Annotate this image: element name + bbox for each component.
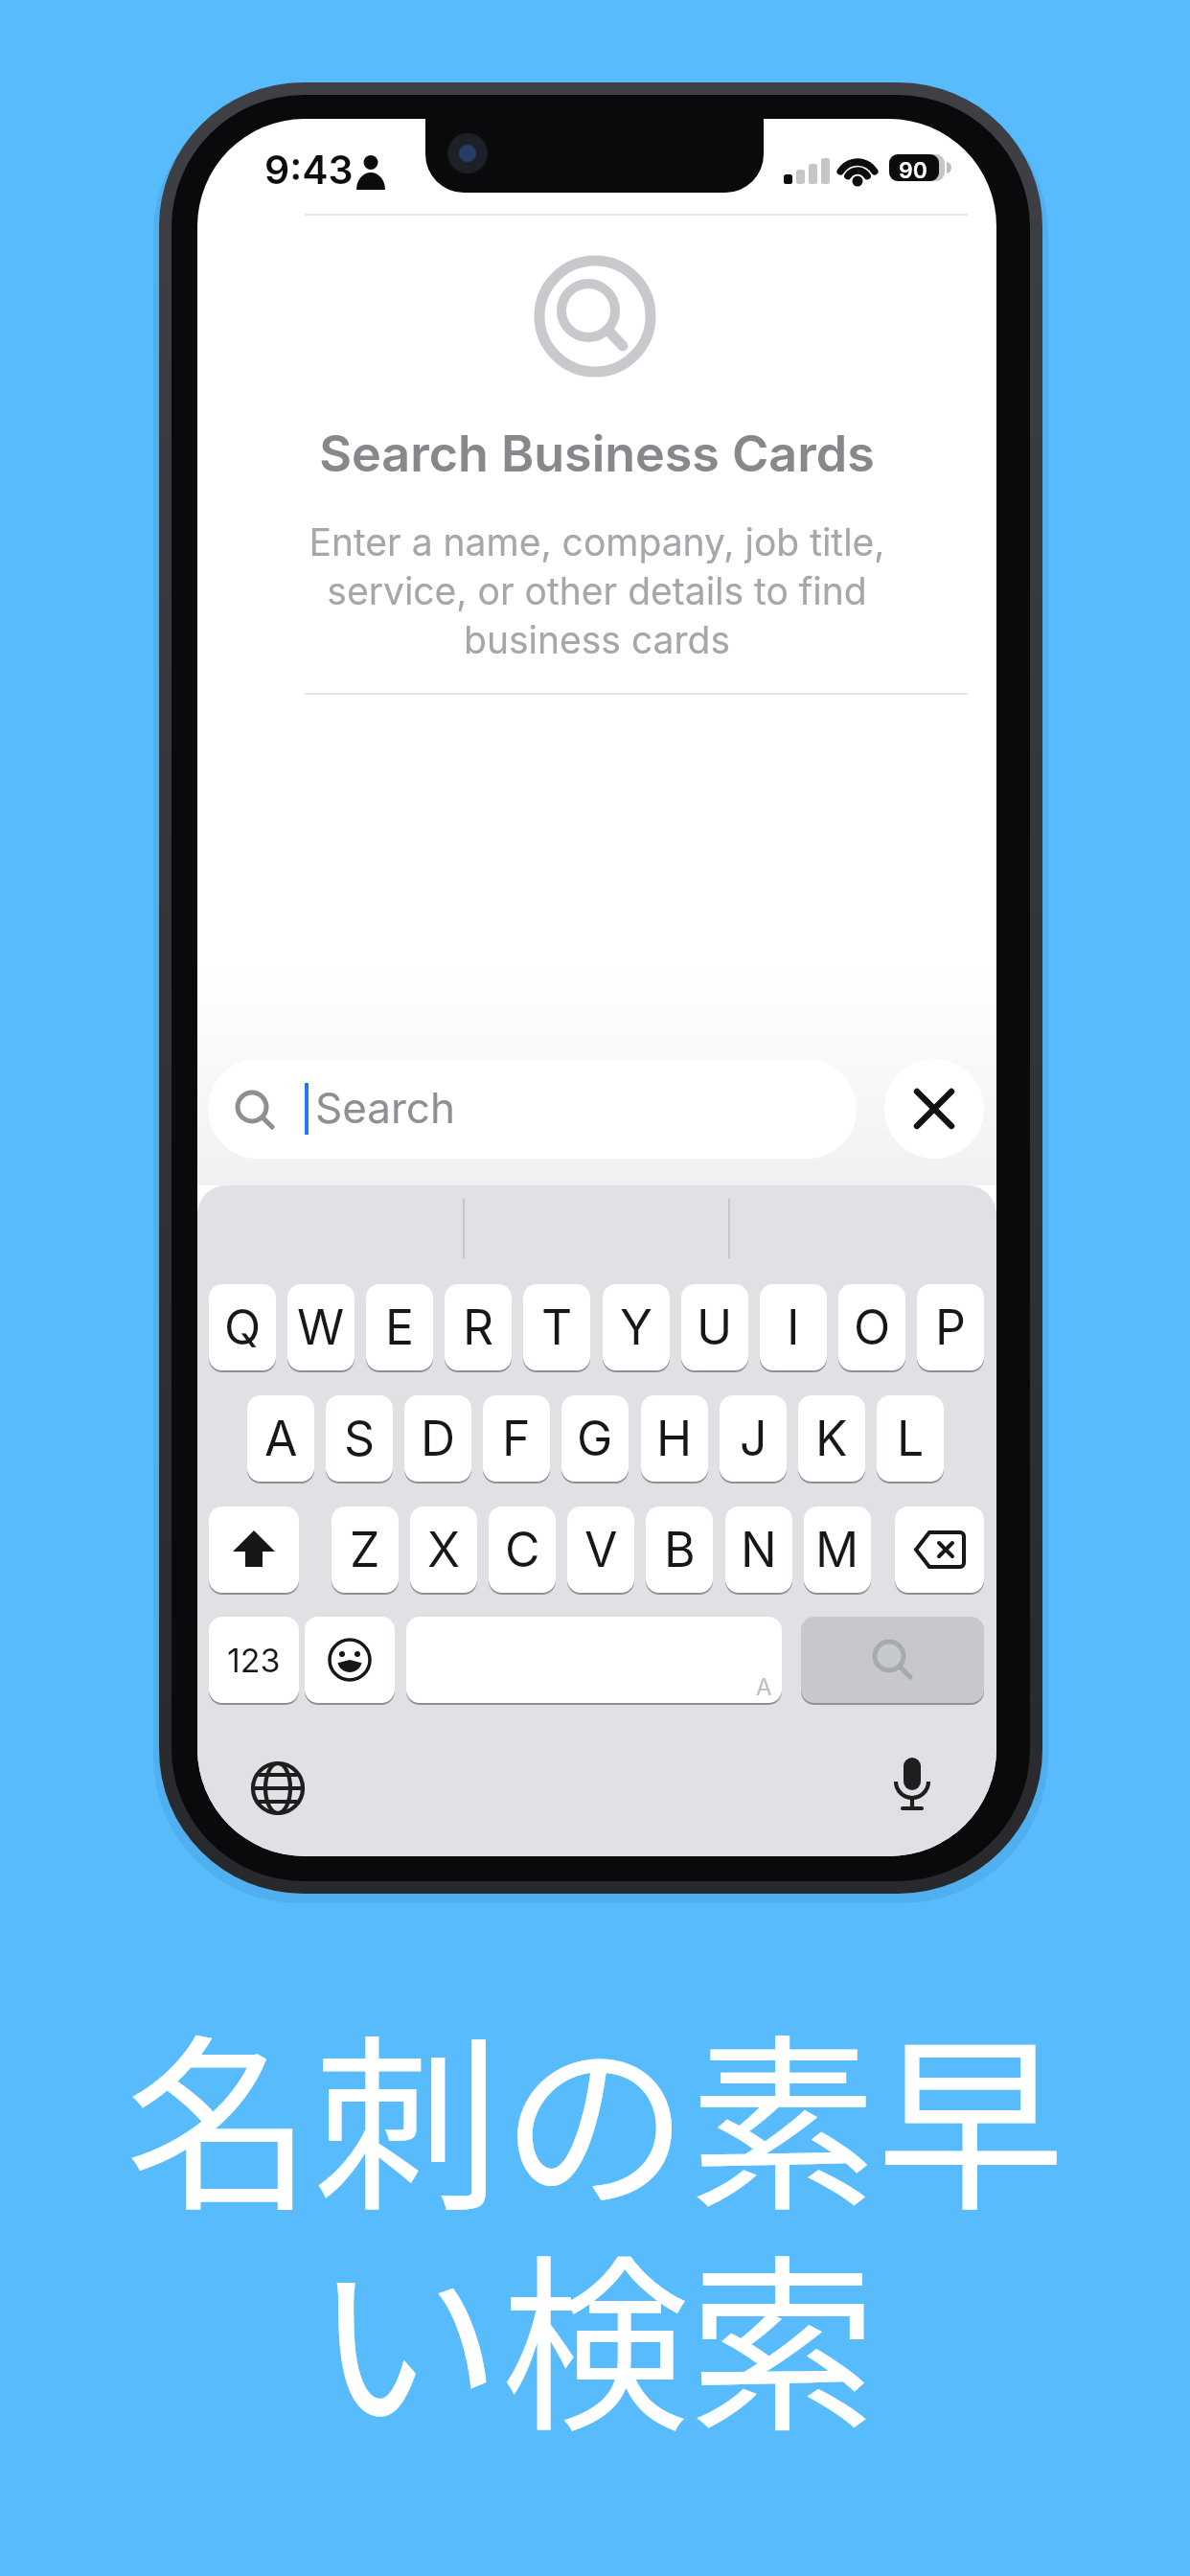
staticText: T bbox=[541, 1299, 573, 1356]
button[interactable]: Y bbox=[603, 1284, 670, 1370]
staticText: 123 bbox=[227, 1641, 281, 1680]
staticText: Y bbox=[620, 1299, 652, 1356]
staticText: Q bbox=[224, 1299, 262, 1356]
staticText: B bbox=[664, 1521, 696, 1578]
button[interactable]: R bbox=[445, 1284, 512, 1370]
staticText: J bbox=[740, 1410, 767, 1467]
staticText: Search Business Cards bbox=[197, 424, 996, 484]
button[interactable]: C bbox=[489, 1506, 556, 1593]
button[interactable]: Search bbox=[208, 1059, 857, 1159]
staticText: K bbox=[815, 1410, 848, 1467]
button[interactable] bbox=[305, 1617, 395, 1703]
button[interactable]: 123 bbox=[209, 1617, 299, 1703]
staticText: V bbox=[584, 1521, 618, 1578]
staticText: X bbox=[427, 1521, 461, 1578]
staticText: 9:43 bbox=[264, 146, 354, 194]
staticText: M bbox=[815, 1521, 859, 1578]
button[interactable] bbox=[895, 1506, 984, 1593]
button[interactable]: K bbox=[798, 1395, 865, 1482]
staticText: D bbox=[421, 1410, 456, 1467]
staticText: N bbox=[741, 1521, 777, 1578]
button[interactable] bbox=[884, 1059, 984, 1159]
staticText: F bbox=[502, 1410, 531, 1467]
button[interactable]: D bbox=[404, 1395, 471, 1482]
staticText: Z bbox=[350, 1521, 380, 1578]
button[interactable]: I bbox=[760, 1284, 827, 1370]
button[interactable]: L bbox=[877, 1395, 944, 1482]
button[interactable]: P bbox=[917, 1284, 984, 1370]
button[interactable]: Q bbox=[209, 1284, 276, 1370]
staticText: Enter a name, company, job title, servic… bbox=[197, 519, 996, 662]
staticText: Search bbox=[315, 1082, 456, 1133]
button[interactable]: X bbox=[410, 1506, 477, 1593]
button[interactable]: M bbox=[804, 1506, 871, 1593]
staticText: I bbox=[787, 1299, 800, 1356]
staticText: A bbox=[756, 1673, 772, 1701]
staticText: G bbox=[577, 1410, 613, 1467]
button[interactable]: G bbox=[561, 1395, 629, 1482]
button[interactable] bbox=[209, 1506, 299, 1593]
staticText: 90 bbox=[899, 157, 927, 184]
staticText: H bbox=[656, 1410, 693, 1467]
button[interactable]: E bbox=[366, 1284, 433, 1370]
button[interactable]: H bbox=[641, 1395, 708, 1482]
button[interactable]: V bbox=[567, 1506, 634, 1593]
staticText: S bbox=[344, 1410, 376, 1467]
button[interactable]: A bbox=[247, 1395, 314, 1482]
button[interactable]: O bbox=[838, 1284, 905, 1370]
button[interactable]: A bbox=[406, 1617, 782, 1703]
staticText: P bbox=[935, 1299, 966, 1356]
button[interactable]: U bbox=[681, 1284, 748, 1370]
staticText: U bbox=[697, 1299, 733, 1356]
button[interactable]: F bbox=[483, 1395, 550, 1482]
staticText: L bbox=[897, 1410, 925, 1467]
button[interactable] bbox=[801, 1617, 984, 1703]
staticText: C bbox=[505, 1521, 540, 1578]
button[interactable]: T bbox=[523, 1284, 590, 1370]
button[interactable]: N bbox=[725, 1506, 792, 1593]
staticText: E bbox=[385, 1299, 415, 1356]
button[interactable]: B bbox=[646, 1506, 713, 1593]
staticText: O bbox=[854, 1299, 891, 1356]
button[interactable]: W bbox=[287, 1284, 355, 1370]
button[interactable]: J bbox=[720, 1395, 787, 1482]
staticText: A bbox=[264, 1410, 298, 1467]
staticText: 名刺の素早 い検索 bbox=[0, 1976, 1190, 2469]
staticText: W bbox=[297, 1299, 345, 1356]
staticText: R bbox=[463, 1299, 494, 1356]
button[interactable]: Z bbox=[332, 1506, 399, 1593]
button[interactable]: S bbox=[326, 1395, 393, 1482]
